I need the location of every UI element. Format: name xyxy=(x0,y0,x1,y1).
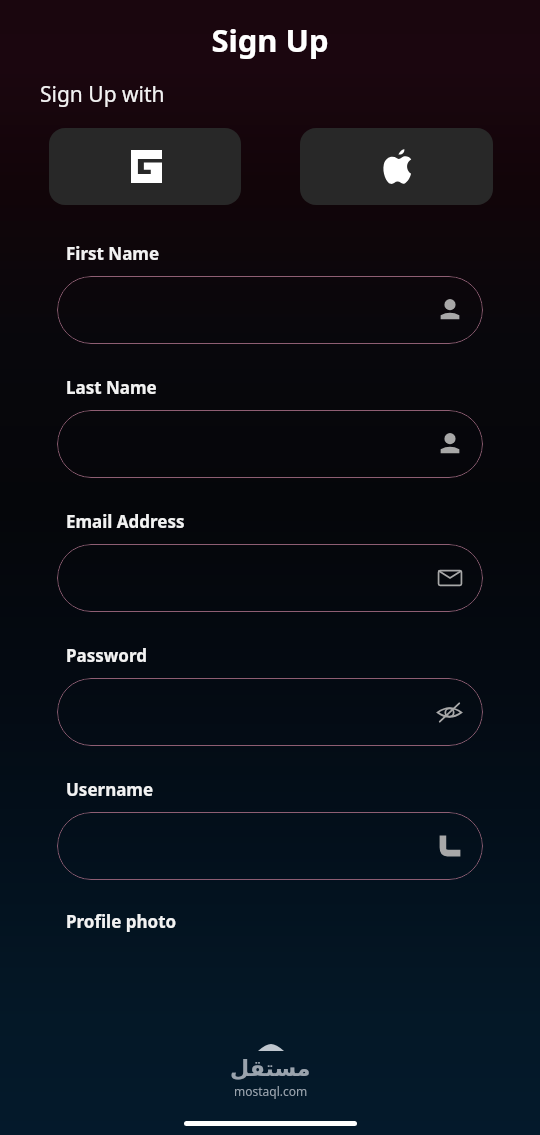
staticText: Sign Up with xyxy=(40,80,165,109)
staticText: Last Name xyxy=(66,376,157,399)
staticText: Profile photo xyxy=(66,910,177,933)
button[interactable] xyxy=(57,276,483,344)
button[interactable] xyxy=(57,544,483,612)
staticText: Password xyxy=(66,644,147,667)
staticText: مستقل xyxy=(230,1056,311,1082)
button[interactable] xyxy=(57,812,483,880)
button[interactable] xyxy=(57,410,483,478)
staticText: Email Address xyxy=(66,510,185,533)
staticText: mostaql.com xyxy=(234,1083,308,1099)
staticText: First Name xyxy=(66,242,160,265)
button[interactable]: Sign up with Apple xyxy=(300,128,493,205)
button[interactable]: Sign up with Google xyxy=(49,128,241,205)
staticText: Sign Up xyxy=(211,19,329,61)
button[interactable] xyxy=(57,678,483,746)
staticText: Username xyxy=(66,778,154,801)
